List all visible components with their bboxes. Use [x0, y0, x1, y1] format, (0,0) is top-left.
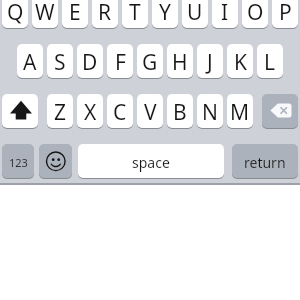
staticText: W — [35, 0, 55, 27]
button[interactable]: Z — [47, 94, 73, 128]
staticText: P — [279, 0, 292, 27]
button[interactable] — [39, 144, 72, 178]
staticText: E — [69, 0, 81, 27]
staticText: B — [173, 98, 187, 127]
staticText: Q — [7, 0, 24, 27]
staticText: T — [129, 0, 141, 27]
staticText: 123 — [9, 155, 28, 170]
button[interactable]: F — [107, 44, 133, 78]
staticText: X — [84, 98, 97, 127]
button[interactable]: C — [107, 94, 133, 128]
button[interactable]: B — [167, 94, 193, 128]
staticText: H — [172, 48, 188, 77]
staticText: G — [142, 48, 158, 77]
button[interactable] — [2, 94, 38, 128]
staticText: A — [23, 48, 37, 77]
staticText: D — [82, 48, 98, 77]
button[interactable]: U — [182, 0, 208, 28]
staticText: F — [115, 48, 126, 77]
staticText: J — [207, 48, 213, 77]
staticText: O — [247, 0, 264, 27]
button[interactable]: T — [122, 0, 148, 28]
button[interactable]: V — [137, 94, 163, 128]
staticText: Z — [54, 98, 67, 127]
button[interactable]: W — [32, 0, 58, 28]
button[interactable]: H — [167, 44, 193, 78]
staticText: C — [113, 98, 127, 127]
staticText: space — [132, 153, 170, 172]
button[interactable]: return — [232, 144, 298, 178]
staticText: L — [264, 48, 276, 77]
button[interactable]: J — [197, 44, 223, 78]
button[interactable]: N — [197, 94, 223, 128]
staticText: S — [54, 48, 66, 77]
button[interactable]: K — [227, 44, 253, 78]
staticText: V — [144, 98, 157, 127]
button[interactable]: Q — [2, 0, 28, 28]
button[interactable]: Y — [152, 0, 178, 28]
staticText: K — [234, 48, 247, 77]
staticText: R — [98, 0, 112, 27]
button[interactable]: I — [212, 0, 238, 28]
staticText: N — [202, 98, 218, 127]
button[interactable]: D — [77, 44, 103, 78]
button[interactable]: A — [17, 44, 43, 78]
button[interactable]: L — [257, 44, 283, 78]
button[interactable]: R — [92, 0, 118, 28]
button[interactable]: P — [272, 0, 298, 28]
button[interactable]: 123 — [2, 144, 34, 178]
button[interactable]: M — [227, 94, 253, 128]
staticText: return — [244, 153, 286, 172]
button[interactable]: space — [78, 144, 224, 178]
button[interactable]: S — [47, 44, 73, 78]
button[interactable]: G — [137, 44, 163, 78]
staticText: I — [221, 0, 229, 27]
button[interactable]: O — [242, 0, 268, 28]
staticText: M — [230, 98, 250, 127]
button[interactable]: X — [77, 94, 103, 128]
staticText: U — [187, 0, 203, 27]
button[interactable]: E — [62, 0, 88, 28]
button[interactable] — [262, 94, 298, 128]
staticText: Y — [159, 0, 171, 27]
